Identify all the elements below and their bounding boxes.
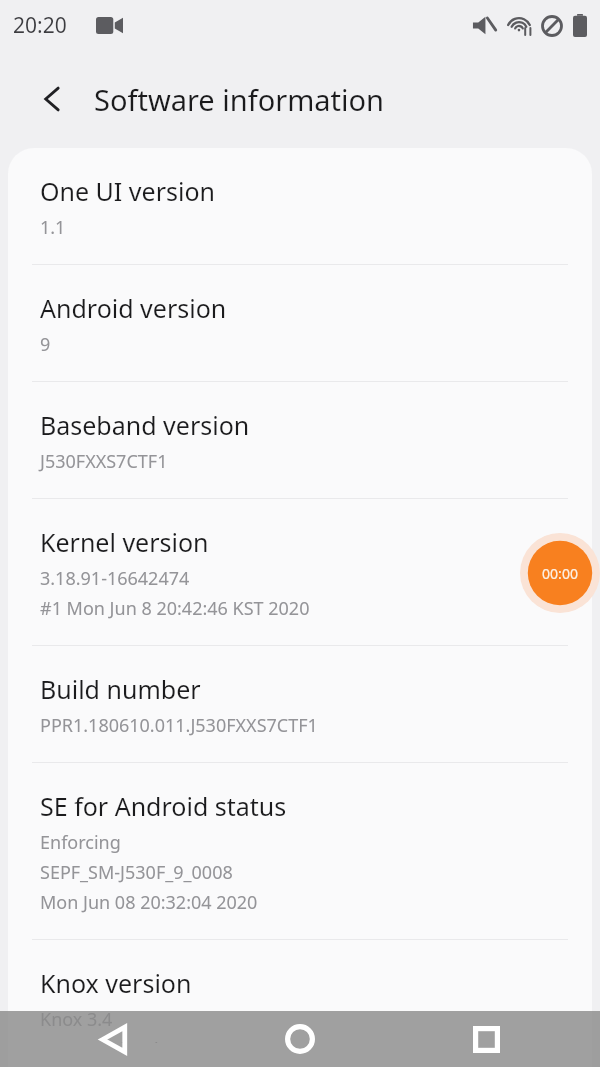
button[interactable]: SE for Android status xyxy=(8,763,592,939)
button[interactable]: Back xyxy=(76,1011,152,1067)
staticText: Mon Jun 08 20:32:04 2020 xyxy=(40,890,258,915)
staticText: SE for Android status xyxy=(40,789,287,823)
staticText: Build number xyxy=(40,672,201,706)
staticText: Knox API level 29 xyxy=(40,1037,184,1043)
button[interactable]: Recents xyxy=(448,1011,524,1067)
staticText: 00:00 xyxy=(542,564,578,583)
staticText: Android version xyxy=(40,291,227,325)
button[interactable]: Baseband version xyxy=(8,382,592,498)
staticText: Knox version xyxy=(40,966,192,1000)
staticText: Knox 3.4 xyxy=(40,1007,113,1032)
staticText: 1.1 xyxy=(40,215,66,240)
staticText: #1 Mon Jun 8 20:42:46 KST 2020 xyxy=(40,596,310,621)
staticText: 9 xyxy=(40,332,51,357)
button[interactable]: One UI version xyxy=(8,148,592,264)
staticText: Baseband version xyxy=(40,408,250,442)
staticText: PPR1.180610.011.J530FXXS7CTF1 xyxy=(40,713,318,738)
button[interactable]: Back xyxy=(28,74,78,124)
staticText: Enforcing xyxy=(40,830,121,855)
staticText: Software information xyxy=(94,80,384,119)
staticText: 20:20 xyxy=(13,11,67,40)
staticText: SEPF_SM-J530F_9_0008 xyxy=(40,860,233,885)
staticText: One UI version xyxy=(40,174,215,208)
button[interactable]: Build number xyxy=(8,646,592,762)
staticText: 3.18.91-16642474 xyxy=(40,566,190,591)
button[interactable]: Android version xyxy=(8,265,592,381)
button[interactable]: Kernel version xyxy=(8,499,592,645)
button[interactable]: Knox version xyxy=(8,940,592,1067)
button[interactable]: Home xyxy=(262,1011,338,1067)
staticText: Kernel version xyxy=(40,525,209,559)
button[interactable]: Screen recorder timer 00:00 xyxy=(520,532,600,614)
staticText: J530FXXS7CTF1 xyxy=(40,449,168,474)
